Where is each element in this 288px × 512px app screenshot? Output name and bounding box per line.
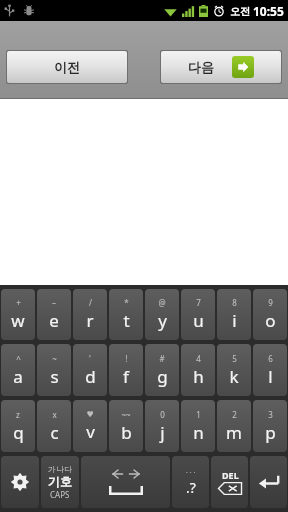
- staticText: 2: [232, 409, 237, 420]
- staticText: d: [85, 365, 96, 388]
- staticText: z: [16, 409, 20, 420]
- staticText: DEL: [222, 469, 239, 481]
- button[interactable]: x: [37, 400, 71, 452]
- button[interactable]: ': [73, 344, 107, 396]
- button[interactable]: 8: [217, 289, 251, 340]
- staticText: ♥: [86, 410, 94, 419]
- staticText: ~~: [121, 409, 131, 420]
- staticText: .?: [186, 478, 196, 497]
- staticText: 0: [160, 409, 165, 420]
- staticText: e: [49, 309, 59, 332]
- staticText: i: [232, 309, 237, 332]
- button[interactable]: 다음: [161, 51, 281, 83]
- staticText: 가나다: [48, 464, 72, 474]
- staticText: 6: [268, 353, 273, 364]
- button[interactable]: Space: [81, 456, 170, 508]
- staticText: 8: [232, 297, 237, 308]
- staticText: 오전: [230, 5, 250, 18]
- staticText: x: [52, 409, 57, 420]
- staticText: w: [11, 309, 25, 332]
- staticText: ~: [52, 353, 57, 364]
- staticText: o: [265, 309, 276, 332]
- staticText: l: [268, 365, 273, 388]
- staticText: 3: [268, 409, 273, 420]
- button[interactable]: +: [1, 289, 35, 340]
- staticText: c: [50, 421, 59, 444]
- other: 다음: [232, 56, 254, 78]
- staticText: *: [124, 297, 129, 308]
- staticText: –: [52, 297, 56, 308]
- button[interactable]: *: [109, 289, 143, 340]
- staticText: h: [193, 365, 204, 388]
- button[interactable]: –: [37, 289, 71, 340]
- staticText: !: [125, 353, 128, 364]
- staticText: b: [121, 421, 132, 444]
- button[interactable]: 가나다: [41, 456, 79, 508]
- button[interactable]: /: [73, 289, 107, 340]
- button[interactable]: ~: [37, 344, 71, 396]
- button[interactable]: Enter: [250, 456, 287, 508]
- button[interactable]: 7: [181, 289, 215, 340]
- staticText: 5: [232, 353, 237, 364]
- staticText: @: [158, 297, 166, 308]
- button[interactable]: z: [1, 400, 35, 452]
- button[interactable]: 4: [181, 344, 215, 396]
- button[interactable]: ♥: [73, 400, 107, 452]
- staticText: g: [157, 365, 168, 388]
- staticText: v: [86, 420, 95, 443]
- staticText: ^: [16, 353, 21, 364]
- staticText: m: [226, 421, 242, 444]
- staticText: k: [229, 365, 239, 388]
- button[interactable]: 이전: [7, 51, 127, 83]
- staticText: 다음: [188, 59, 214, 75]
- staticText: 1: [196, 409, 201, 420]
- staticText: 4: [196, 353, 201, 364]
- staticText: CAPS: [50, 489, 70, 500]
- staticText: y: [158, 309, 167, 332]
- button[interactable]: @: [145, 289, 179, 340]
- button[interactable]: ~~: [109, 400, 143, 452]
- button[interactable]: 6: [253, 344, 287, 396]
- button[interactable]: Delete: [211, 456, 248, 508]
- staticText: 기호: [48, 474, 72, 489]
- staticText: 10:55: [253, 3, 284, 19]
- staticText: p: [265, 421, 276, 444]
- button[interactable]: Settings: [1, 456, 39, 508]
- staticText: 9: [268, 297, 273, 308]
- button[interactable]: 9: [253, 289, 287, 340]
- staticText: · · ·: [186, 468, 196, 478]
- button[interactable]: ^: [1, 344, 35, 396]
- staticText: n: [193, 421, 204, 444]
- staticText: t: [123, 309, 130, 332]
- staticText: q: [13, 421, 24, 444]
- staticText: 7: [196, 297, 201, 308]
- staticText: r: [86, 309, 94, 332]
- staticText: s: [50, 365, 59, 388]
- staticText: ': [89, 353, 91, 364]
- staticText: f: [123, 365, 129, 388]
- button[interactable]: !: [109, 344, 143, 396]
- button[interactable]: 1: [181, 400, 215, 452]
- staticText: a: [13, 365, 23, 388]
- staticText: j: [160, 421, 165, 444]
- button[interactable]: · · ·: [172, 456, 209, 508]
- staticText: 이전: [54, 59, 80, 75]
- button[interactable]: 3: [253, 400, 287, 452]
- staticText: +: [16, 297, 21, 308]
- staticText: #: [159, 353, 165, 364]
- button[interactable]: 0: [145, 400, 179, 452]
- staticText: u: [193, 309, 204, 332]
- button[interactable]: 2: [217, 400, 251, 452]
- staticText: /: [89, 297, 92, 308]
- button[interactable]: #: [145, 344, 179, 396]
- button[interactable]: 5: [217, 344, 251, 396]
